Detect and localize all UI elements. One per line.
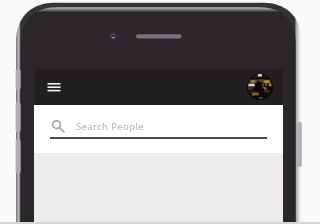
button[interactable]: Profile photo <box>247 74 273 100</box>
staticText: Search People <box>76 120 144 133</box>
button[interactable]: Open navigation menu <box>42 75 66 99</box>
